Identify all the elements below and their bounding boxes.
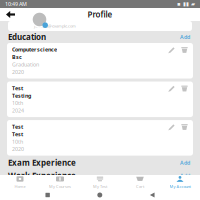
staticText: Test bbox=[12, 130, 23, 138]
staticText: 2020 bbox=[12, 68, 24, 75]
button[interactable]: Testing bbox=[0, 182, 200, 200]
staticText: Exam Experience bbox=[8, 157, 76, 168]
button[interactable]: Test bbox=[0, 120, 200, 156]
button[interactable]: My Test bbox=[80, 174, 120, 191]
staticText: 2024 bbox=[12, 107, 24, 114]
button[interactable]: Add bbox=[178, 32, 192, 42]
button[interactable]: Home bbox=[0, 174, 40, 191]
staticText: My Courses bbox=[49, 184, 71, 189]
staticText: Work Experience bbox=[8, 170, 76, 181]
button[interactable]: Back bbox=[0, 7, 21, 21]
staticText: 10th bbox=[12, 99, 23, 107]
staticText: Add bbox=[180, 159, 190, 166]
button[interactable]: Home bbox=[95, 190, 104, 199]
staticText: Education bbox=[8, 32, 46, 42]
button[interactable]: My Courses bbox=[40, 174, 80, 191]
staticText: My Account bbox=[169, 184, 190, 189]
staticText: Profile bbox=[87, 9, 112, 20]
button[interactable]: Computer science bbox=[0, 43, 200, 78]
staticText: 10th bbox=[12, 138, 23, 145]
staticText: john.doe@example.com bbox=[34, 23, 76, 29]
staticText: Testing bbox=[12, 185, 31, 192]
staticText: Testing bbox=[12, 92, 31, 99]
staticText: Add bbox=[180, 33, 190, 41]
staticText: Add bbox=[180, 172, 190, 179]
staticText: Test bbox=[12, 123, 23, 130]
staticText: Graduation bbox=[12, 61, 39, 68]
staticText: Cart bbox=[136, 184, 144, 189]
staticText: Computer science bbox=[12, 46, 57, 53]
button[interactable]: Recents bbox=[43, 191, 52, 199]
staticText: 10:49 AM bbox=[5, 0, 27, 8]
button[interactable]: My Account bbox=[160, 174, 200, 191]
staticText: Bsc bbox=[12, 53, 22, 61]
button[interactable]: Back bbox=[148, 190, 157, 199]
staticText: ▪ ▮▮ ▰ bbox=[177, 1, 195, 7]
button[interactable]: Add bbox=[178, 158, 192, 167]
button[interactable]: Add bbox=[178, 171, 192, 180]
staticText: My Test bbox=[93, 184, 107, 189]
button[interactable]: Cart bbox=[120, 174, 160, 191]
button[interactable]: Test bbox=[0, 81, 200, 117]
button[interactable]: Change profile photo bbox=[31, 11, 48, 28]
staticText: Home bbox=[14, 184, 25, 189]
staticText: Test bbox=[12, 84, 23, 92]
staticText: 2020 bbox=[12, 145, 24, 153]
